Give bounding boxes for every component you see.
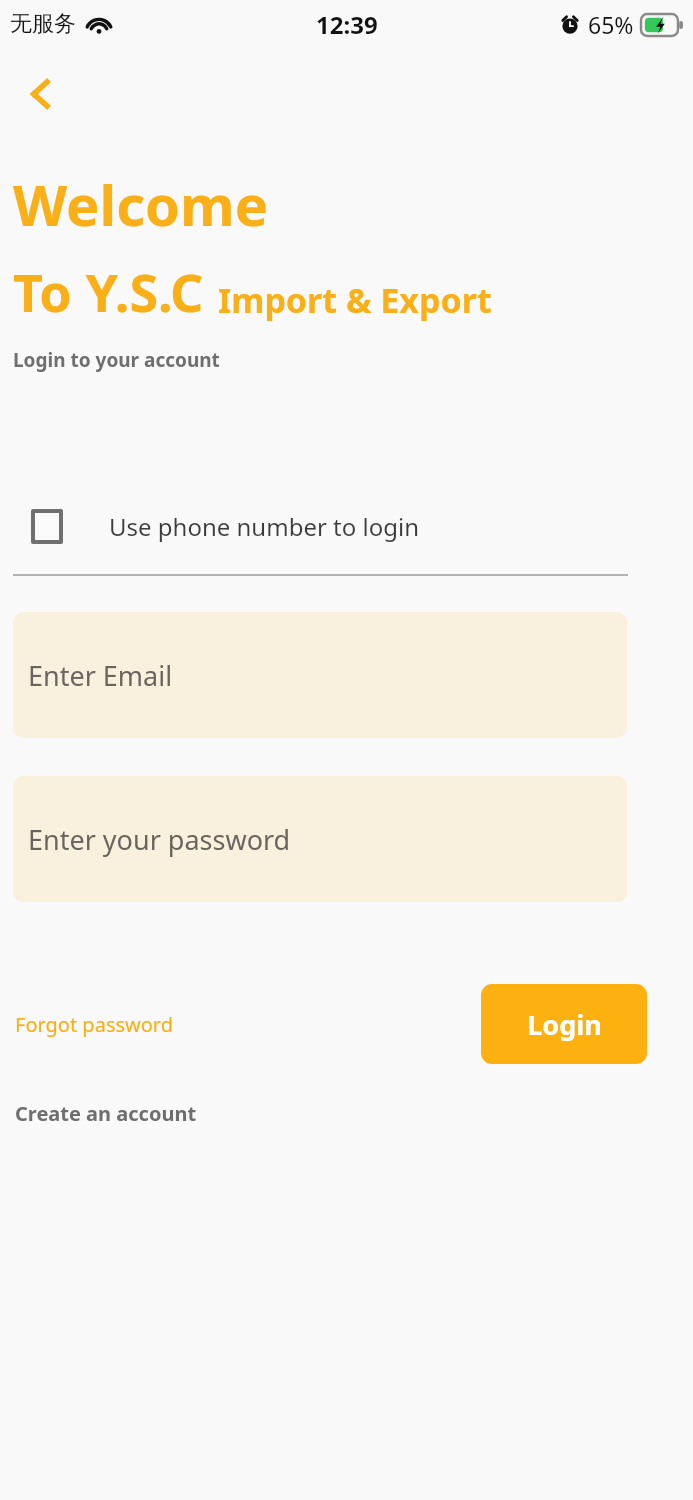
- staticText: 65%: [588, 9, 634, 40]
- staticText: Welcome: [13, 166, 269, 242]
- button[interactable]: Enter your password: [13, 776, 627, 902]
- staticText: Create an account: [15, 1100, 197, 1127]
- staticText: Enter Email: [28, 657, 173, 694]
- button[interactable]: Use phone number to login: [13, 501, 438, 552]
- staticText: 12:39: [316, 8, 378, 41]
- staticText: To Y.S.C: [13, 256, 204, 327]
- button[interactable]: Back: [13, 66, 69, 122]
- staticText: Login: [527, 1006, 602, 1043]
- button[interactable]: Enter Email: [13, 612, 627, 738]
- staticText: Enter your password: [28, 821, 291, 858]
- staticText: Use phone number to login: [109, 510, 420, 543]
- staticText: Login to your account: [13, 347, 220, 373]
- button[interactable]: Create an account: [13, 1094, 199, 1133]
- staticText: Forgot password: [15, 1011, 174, 1038]
- button[interactable]: Forgot password: [13, 1001, 176, 1048]
- staticText: 无服务: [10, 10, 76, 38]
- button[interactable]: Login: [481, 984, 647, 1064]
- staticText: Import & Export: [218, 277, 492, 323]
